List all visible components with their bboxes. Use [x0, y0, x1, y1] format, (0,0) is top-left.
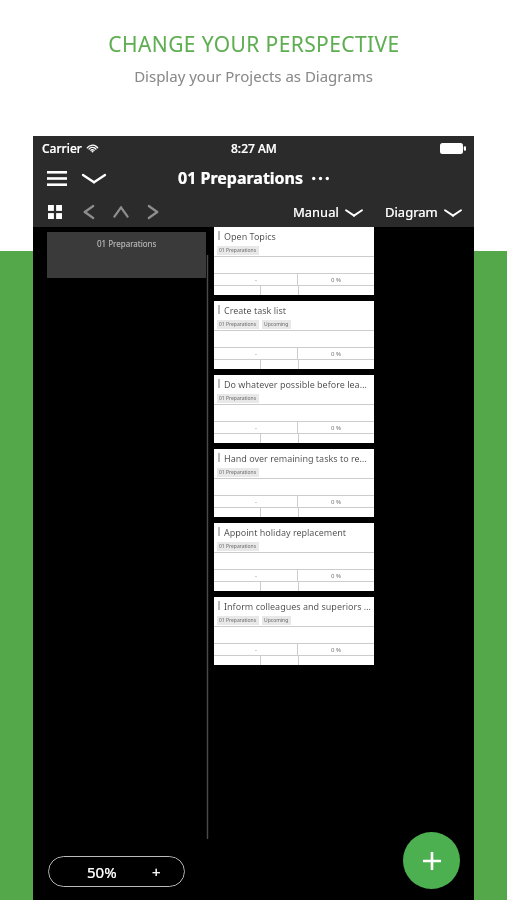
- staticText: Manual: [293, 203, 339, 221]
- staticText: 8:27 AM: [231, 140, 277, 156]
- staticText: 0 %: [331, 350, 341, 358]
- staticText: Open Topics: [224, 230, 276, 242]
- button[interactable]: Add: [403, 832, 460, 889]
- staticText: -: [255, 646, 257, 654]
- staticText: 01 Preparations: [219, 247, 257, 254]
- button[interactable]: 50%: [48, 856, 185, 887]
- button[interactable]: Open Topics: [214, 227, 374, 295]
- staticText: Upcoming: [264, 617, 289, 624]
- staticText: 01 Preparations: [219, 543, 257, 550]
- staticText: 01 Preparations: [219, 469, 257, 476]
- staticText: Appoint holiday replacement: [224, 526, 347, 538]
- staticText: Diagram: [385, 203, 438, 221]
- button[interactable]: Inform colleagues and superiors …: [214, 597, 374, 665]
- staticText: 0 %: [331, 276, 341, 284]
- staticText: Carrier: [42, 140, 82, 156]
- button[interactable]: 01 Preparations: [47, 232, 206, 278]
- button[interactable]: More options: [311, 171, 329, 185]
- staticText: -: [255, 276, 257, 284]
- button[interactable]: Expand: [79, 163, 109, 193]
- staticText: 01 Preparations: [219, 617, 257, 624]
- staticText: CHANGE YOUR PERSPECTIVE: [108, 30, 400, 59]
- staticText: 0 %: [331, 646, 341, 654]
- staticText: -: [255, 424, 257, 432]
- staticText: 01 Preparations: [219, 321, 257, 328]
- staticText: +: [152, 862, 161, 882]
- staticText: Display your Projects as Diagrams: [134, 66, 373, 86]
- button[interactable]: Diagram: [382, 200, 465, 224]
- staticText: 01 Preparations: [219, 395, 257, 402]
- staticText: Inform colleagues and superiors …: [224, 600, 371, 612]
- staticText: 01 Preparations: [178, 167, 304, 189]
- button[interactable]: Grid view: [42, 199, 68, 225]
- staticText: -: [255, 498, 257, 506]
- button[interactable]: Menu: [41, 162, 73, 194]
- staticText: Do whatever possible before lea…: [224, 378, 367, 390]
- button[interactable]: Manual: [290, 200, 366, 224]
- staticText: 50%: [87, 862, 117, 882]
- staticText: Create task list: [224, 304, 286, 316]
- button[interactable]: Previous: [76, 199, 102, 225]
- button[interactable]: Appoint holiday replacement: [214, 523, 374, 591]
- button[interactable]: Do whatever possible before lea…: [214, 375, 374, 443]
- staticText: Hand over remaining tasks to re…: [224, 452, 367, 464]
- staticText: -: [255, 572, 257, 580]
- staticText: 0 %: [331, 572, 341, 580]
- staticText: Upcoming: [264, 321, 289, 328]
- staticText: 01 Preparations: [97, 238, 157, 249]
- staticText: 0 %: [331, 498, 341, 506]
- staticText: 0 %: [331, 424, 341, 432]
- button[interactable]: Next: [140, 199, 166, 225]
- button[interactable]: Up: [108, 199, 134, 225]
- staticText: -: [255, 350, 257, 358]
- button[interactable]: Create task list: [214, 301, 374, 369]
- button[interactable]: Hand over remaining tasks to re…: [214, 449, 374, 517]
